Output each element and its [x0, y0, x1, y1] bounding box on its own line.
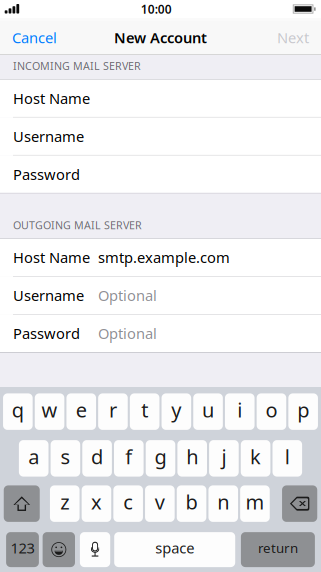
button[interactable]: p	[288, 393, 318, 430]
button[interactable]: Dictation	[80, 532, 110, 567]
staticText: Username	[13, 127, 84, 146]
staticText: Host Name	[13, 248, 90, 267]
button[interactable]: j	[209, 440, 239, 477]
button[interactable]: u	[193, 393, 223, 430]
staticText: Next	[277, 28, 309, 47]
staticText: s	[60, 443, 70, 470]
button[interactable]: i	[225, 393, 254, 430]
button[interactable]: d	[82, 440, 112, 477]
button[interactable]: f	[114, 440, 144, 477]
button[interactable]: e	[66, 393, 96, 430]
staticText: h	[186, 443, 198, 470]
staticText: Username	[13, 286, 84, 305]
staticText: return	[258, 539, 298, 557]
staticText: Optional	[98, 286, 157, 305]
staticText: Password	[13, 165, 80, 184]
button[interactable]: s	[51, 440, 80, 477]
button[interactable]: l	[272, 440, 302, 477]
button[interactable]: Shift	[4, 485, 40, 522]
button[interactable]: g	[146, 440, 175, 477]
button[interactable]: r	[98, 393, 128, 430]
button[interactable]: c	[113, 485, 143, 522]
button[interactable]: v	[145, 485, 175, 522]
button[interactable]: w	[35, 393, 64, 430]
staticText: a	[28, 443, 39, 470]
button[interactable]: t	[130, 393, 159, 430]
staticText: 10:00	[141, 1, 172, 17]
staticText: d	[91, 443, 103, 470]
staticText: y	[171, 397, 181, 423]
staticText: j	[221, 443, 226, 470]
button[interactable]: space	[114, 532, 235, 567]
staticText: New Account	[114, 28, 207, 47]
staticText: i	[237, 397, 242, 423]
button[interactable]: 123	[6, 532, 39, 567]
button[interactable]: Delete	[282, 485, 317, 522]
button[interactable]: o	[257, 393, 286, 430]
button[interactable]: return	[241, 532, 315, 567]
staticText: t	[141, 397, 148, 423]
staticText: v	[155, 489, 165, 515]
staticText: l	[285, 443, 290, 470]
button[interactable]: m	[240, 485, 270, 522]
button[interactable]: x	[82, 485, 111, 522]
staticText: Password	[13, 324, 80, 343]
button[interactable]: y	[162, 393, 191, 430]
staticText: e	[76, 397, 87, 423]
staticText: o	[265, 397, 277, 423]
staticText: z	[60, 489, 69, 515]
button[interactable]: z	[50, 485, 80, 522]
staticText: 123	[10, 538, 34, 558]
staticText: u	[202, 397, 214, 423]
staticText: b	[186, 489, 198, 515]
button[interactable]: Next	[265, 20, 321, 54]
button[interactable]: n	[208, 485, 238, 522]
staticText: g	[154, 443, 166, 470]
staticText: OUTGOING MAIL SERVER	[13, 218, 142, 232]
staticText: w	[42, 397, 58, 423]
staticText: p	[297, 397, 309, 423]
staticText: Optional	[98, 324, 157, 343]
staticText: c	[123, 489, 133, 515]
staticText: x	[91, 489, 102, 515]
button[interactable]: b	[177, 485, 206, 522]
staticText: r	[109, 397, 117, 423]
button[interactable]: q	[3, 393, 33, 430]
staticText: space	[155, 538, 194, 558]
staticText: f	[125, 443, 132, 470]
button[interactable]: k	[241, 440, 270, 477]
button[interactable]: Cancel	[0, 20, 69, 54]
button[interactable]: h	[177, 440, 207, 477]
button[interactable]: a	[19, 440, 48, 477]
staticText: k	[250, 443, 261, 470]
button[interactable]: Emoji	[43, 532, 75, 567]
staticText: q	[12, 397, 24, 423]
staticText: INCOMING MAIL SERVER	[13, 59, 141, 73]
staticText: n	[217, 489, 229, 515]
staticText: Host Name	[13, 89, 90, 108]
staticText: m	[245, 489, 264, 515]
staticText: smtp.example.com	[98, 248, 230, 267]
staticText: Cancel	[12, 28, 57, 47]
